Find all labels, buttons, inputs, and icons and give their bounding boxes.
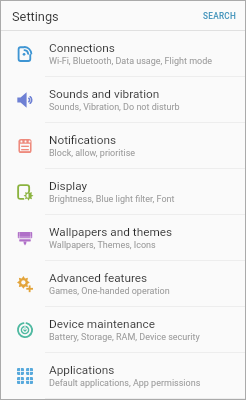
staticText: Brightness, Blue light filter, Font: [49, 194, 175, 205]
staticText: Block, allow, prioritise: [49, 148, 136, 159]
button[interactable]: Display: [1, 169, 245, 215]
staticText: Sounds and vibration: [49, 87, 160, 101]
staticText: Settings: [12, 9, 59, 24]
staticText: Games, One-handed operation: [49, 286, 170, 297]
staticText: Applications: [49, 363, 115, 377]
button[interactable]: Device maintenance: [1, 307, 245, 353]
staticText: Notifications: [49, 133, 117, 147]
staticText: Wallpapers, Themes, Icons: [49, 240, 156, 251]
staticText: Display: [49, 179, 88, 193]
button[interactable]: Connections: [1, 31, 245, 77]
staticText: Default applications, App permissions: [49, 378, 201, 389]
staticText: Advanced features: [49, 271, 148, 285]
button[interactable]: Applications: [1, 353, 245, 399]
staticText: Sounds, Vibration, Do not disturb: [49, 102, 180, 113]
button[interactable]: Sounds and vibration: [1, 77, 245, 123]
staticText: Battery, Storage, RAM, Device security: [49, 332, 200, 343]
staticText: Wi-Fi, Bluetooth, Data usage, Flight mod…: [49, 56, 213, 67]
button[interactable]: Advanced features: [1, 261, 245, 307]
staticText: Wallpapers and themes: [49, 225, 173, 239]
staticText: Connections: [49, 41, 115, 55]
staticText: SEARCH: [203, 11, 237, 21]
button[interactable]: Notifications: [1, 123, 245, 169]
button[interactable]: Wallpapers and themes: [1, 215, 245, 261]
button[interactable]: SEARCH: [195, 5, 245, 27]
staticText: Device maintenance: [49, 317, 155, 331]
